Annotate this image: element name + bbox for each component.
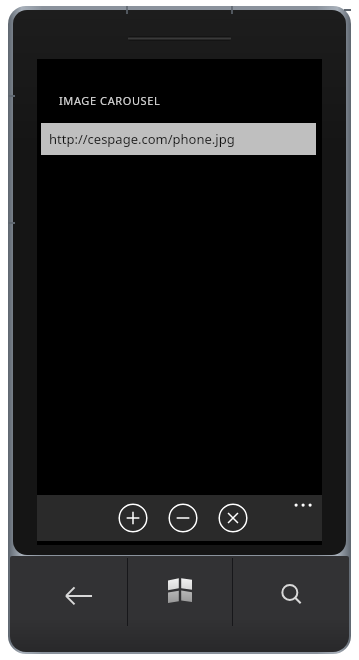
staticText: IMAGE CAROUSEL — [59, 93, 161, 108]
button[interactable]: Add image — [118, 503, 148, 533]
staticText: http://cespage.com/phone.jpg — [49, 130, 235, 148]
button[interactable]: More options — [287, 495, 322, 519]
button[interactable]: Remove image — [168, 503, 198, 533]
button[interactable]: Back — [10, 556, 127, 626]
button[interactable]: Search — [233, 556, 349, 626]
button[interactable]: Clear — [218, 503, 248, 533]
button[interactable]: http://cespage.com/phone.jpg — [41, 123, 316, 155]
button[interactable]: Start — [128, 556, 232, 626]
